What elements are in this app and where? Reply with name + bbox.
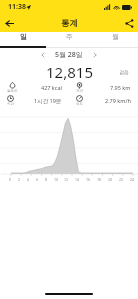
staticText: 일 — [20, 32, 27, 41]
staticText: 12,815 — [46, 62, 93, 82]
staticText: 11:38 — [8, 2, 26, 12]
staticText: 7.95 km — [110, 84, 131, 91]
staticText: 2.79 km/h — [105, 97, 131, 104]
button[interactable]: 주 — [46, 32, 92, 41]
staticText: 1시간 19분 — [34, 97, 62, 105]
staticText: 시간 — [7, 102, 14, 106]
button[interactable]: Share — [120, 14, 138, 32]
staticText: 16 — [86, 177, 91, 182]
button[interactable]: 시간 — [0, 95, 69, 106]
staticText: 8 — [45, 177, 48, 182]
staticText: 칼로리 — [7, 89, 18, 93]
staticText: 거리 — [76, 89, 83, 93]
button[interactable]: 속도 — [69, 95, 138, 106]
staticText: 10 — [54, 177, 59, 182]
staticText: 427 kcal — [41, 84, 62, 91]
button[interactable]: 칼로리 — [0, 82, 69, 93]
staticText: 통계 — [61, 18, 78, 29]
button[interactable]: 거리 — [69, 82, 138, 93]
staticText: 12 — [64, 177, 69, 182]
button[interactable]: 월 — [92, 32, 138, 41]
button[interactable]: Previous day — [37, 49, 49, 61]
staticText: 주 — [66, 32, 73, 41]
staticText: 5월 28일 — [55, 50, 83, 60]
staticText: 24 — [130, 177, 135, 182]
button[interactable]: Next day — [89, 49, 101, 61]
staticText: 4 — [27, 177, 30, 182]
staticText: 22 — [119, 177, 124, 182]
staticText: 20 — [108, 177, 113, 182]
staticText: 14 — [75, 177, 80, 182]
staticText: 0 — [9, 177, 12, 182]
staticText: 월 — [112, 32, 119, 41]
staticText: 18 — [97, 177, 102, 182]
staticText: 2 — [18, 177, 21, 182]
staticText: 걸음 — [119, 69, 129, 75]
button[interactable]: Back — [0, 14, 18, 32]
staticText: 속도 — [76, 102, 83, 106]
button[interactable]: 일 — [0, 32, 46, 41]
staticText: 6 — [36, 177, 39, 182]
